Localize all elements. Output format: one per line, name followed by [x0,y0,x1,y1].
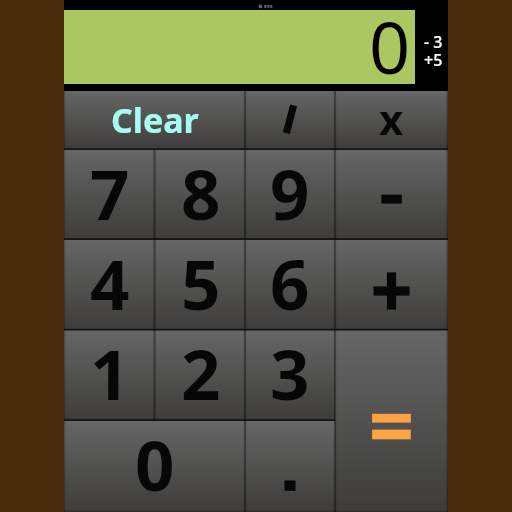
staticText: 3 [270,326,310,417]
button[interactable]: Clear [64,91,245,150]
staticText: x [379,90,404,147]
button[interactable]: 7 [64,150,155,240]
staticText: 0 [135,417,175,509]
staticText: Clear [111,97,199,143]
button[interactable]: 9 [245,150,335,240]
staticText: 8 [181,146,221,236]
staticText: 9 [270,146,310,236]
staticText: 1 [90,326,130,417]
staticText: - 3 +5 [424,31,443,71]
button[interactable]: 6 [245,240,335,331]
staticText: 0 [369,0,411,95]
button[interactable]: 3 [245,330,335,421]
button[interactable]: Minus [335,150,448,240]
button[interactable]: Equals [335,330,448,512]
button[interactable]: 1 [64,330,155,421]
button[interactable]: 0 [64,421,245,512]
button[interactable]: 2 [155,330,246,421]
button[interactable]: 5 [155,240,246,331]
staticText: 2 [181,326,221,417]
staticText: 6 [270,236,310,327]
button[interactable]: 4 [64,240,155,331]
button[interactable]: Plus [335,240,448,331]
button[interactable]: 8 [155,150,246,240]
button[interactable]: Multiply [335,91,448,150]
button[interactable]: Divide [245,91,335,150]
staticText: 7 [90,146,130,236]
button[interactable]: Decimal point [245,421,335,512]
staticText: 5 [181,236,221,327]
staticText: 4 [90,236,130,327]
button[interactable]: Display 0 [64,10,415,84]
